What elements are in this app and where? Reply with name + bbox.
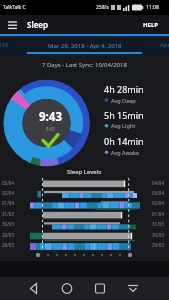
- staticText: TalkTalk C: [3, 4, 26, 11]
- staticText: 30/03: [152, 232, 164, 238]
- staticText: Avg Deep: [111, 97, 136, 104]
- button[interactable]: [4, 17, 22, 32]
- staticText: 018: [0, 41, 9, 49]
- staticText: 03/04: [152, 190, 164, 196]
- staticText: 31/03: [2, 211, 14, 217]
- staticText: Apr: [160, 41, 169, 49]
- staticText: 31/03: [152, 221, 164, 227]
- staticText: 30/03: [2, 221, 14, 227]
- staticText: HELP: [143, 21, 159, 29]
- button[interactable]: Mar 29, 2018 - Apr 4, 2018: [0, 36, 169, 55]
- staticText: Sleep Levels: [67, 168, 102, 176]
- staticText: 02/04: [2, 190, 14, 196]
- staticText: 03/04: [2, 180, 14, 186]
- staticText: 9:43: [39, 109, 62, 125]
- staticText: Avg Awake: [111, 149, 140, 156]
- staticText: Sleep: [27, 19, 49, 30]
- staticText: 11:08: [146, 4, 159, 11]
- staticText: 0h 14min: [104, 135, 144, 147]
- staticText: 01/04: [2, 200, 14, 206]
- button[interactable]: [123, 279, 143, 298]
- staticText: 04/04: [152, 180, 164, 186]
- staticText: Mar 29, 2018 - Apr 4, 2018: [48, 42, 122, 50]
- staticText: 258/s: [96, 4, 109, 11]
- staticText: 29/03: [2, 232, 14, 238]
- button[interactable]: [57, 279, 77, 298]
- staticText: 8:00: [46, 126, 55, 132]
- button[interactable]: [90, 279, 110, 298]
- staticText: 4h 28min: [104, 83, 144, 95]
- staticText: 5h 15min: [104, 109, 144, 121]
- staticText: 7 Days - Last Sync: 10/04/2018: [42, 61, 127, 69]
- staticText: 28/03: [2, 242, 14, 248]
- staticText: 02/04: [152, 200, 164, 206]
- staticText: 29/03: [152, 242, 164, 248]
- button[interactable]: HELP: [136, 17, 166, 32]
- button[interactable]: [24, 279, 44, 298]
- staticText: 01/04: [152, 211, 164, 217]
- staticText: Avg Light: [111, 122, 136, 129]
